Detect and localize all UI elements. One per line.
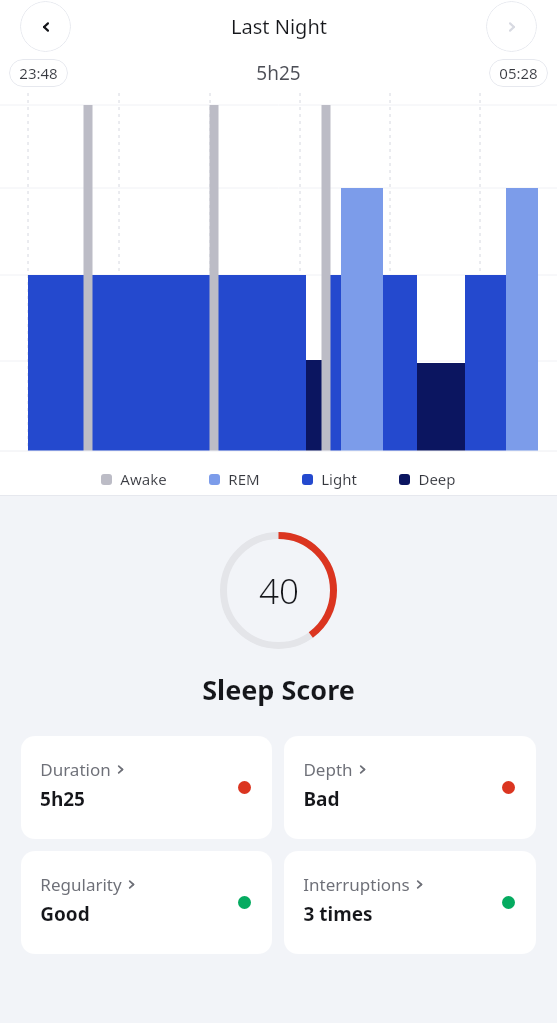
staticText: Deep (418, 469, 456, 489)
staticText: Depth (303, 758, 353, 781)
staticText: 5h25 (40, 786, 85, 812)
button[interactable]: Next night (486, 1, 537, 52)
staticText: 05:28 (499, 63, 538, 83)
button[interactable]: Regularity (21, 851, 272, 954)
button[interactable]: Interruptions (284, 851, 536, 954)
button[interactable]: Duration (21, 736, 272, 839)
staticText: Light (321, 469, 357, 489)
staticText: 23:48 (19, 63, 58, 83)
staticText: Last Night (231, 13, 327, 40)
staticText: Duration (40, 758, 111, 781)
staticText: 40 (259, 567, 299, 615)
button[interactable]: Previous night (20, 1, 71, 52)
staticText: Interruptions (303, 873, 410, 896)
staticText: 5h25 (256, 60, 301, 86)
staticText: Regularity (40, 873, 122, 896)
staticText: REM (228, 469, 260, 489)
staticText: Sleep Score (202, 671, 355, 708)
staticText: Bad (303, 786, 340, 812)
staticText: Good (40, 901, 90, 927)
staticText: Awake (120, 469, 167, 489)
staticText: 3 times (303, 901, 373, 927)
button[interactable]: Depth (284, 736, 536, 839)
